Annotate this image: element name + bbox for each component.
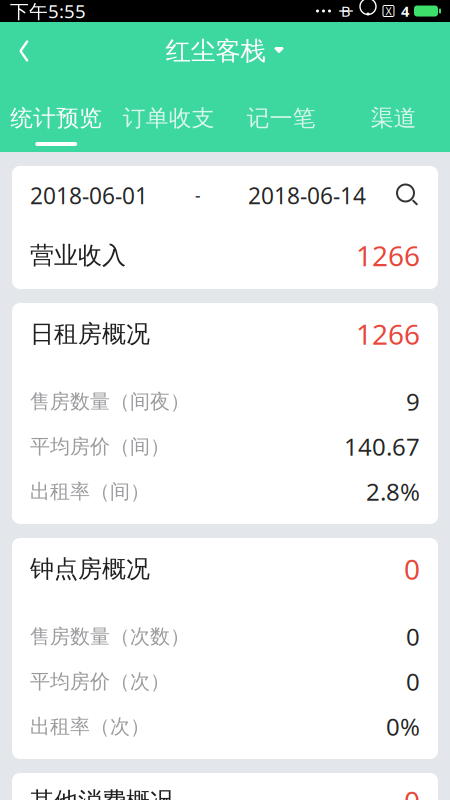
staticText: 下午5:55 [10, 0, 86, 23]
button[interactable]: 返回 [0, 28, 48, 74]
staticText: 平均房价（间） [30, 434, 170, 459]
staticText: 出租率（间） [30, 479, 150, 504]
button[interactable]: 记一笔 [225, 80, 337, 152]
staticText: 售房数量（间夜） [30, 389, 190, 414]
button[interactable]: 渠道 [337, 80, 450, 152]
staticText: 2018-06-14 [248, 180, 366, 210]
staticText: 订单收支 [123, 104, 215, 132]
staticText: - [195, 184, 201, 207]
staticText: 统计预览 [10, 104, 102, 132]
staticText: 钟点房概况 [30, 554, 150, 584]
staticText: X [385, 4, 391, 18]
staticText: B [341, 1, 351, 21]
button[interactable]: 2018-06-01 [12, 167, 438, 223]
staticText: 日租房概况 [30, 319, 150, 349]
staticText: 记一笔 [247, 104, 316, 132]
staticText: 平均房价（次） [30, 669, 170, 694]
staticText: 0 [406, 621, 420, 652]
staticText: 0 [406, 666, 420, 697]
staticText: 4 [401, 1, 409, 21]
staticText: 营业收入 [30, 241, 126, 270]
staticText: 9 [406, 386, 420, 417]
staticText: 出租率（次） [30, 714, 150, 739]
staticText: 渠道 [371, 104, 417, 132]
staticText: 售房数量（次数） [30, 624, 190, 649]
staticText: 2.8% [366, 476, 420, 507]
staticText: 2018-06-01 [30, 180, 148, 210]
button[interactable]: 统计预览 [0, 80, 112, 152]
staticText: 其他消费概况 [30, 786, 174, 800]
staticText: 1266 [356, 237, 420, 274]
button[interactable]: 红尘客栈 [155, 29, 294, 72]
staticText: 0 [404, 782, 420, 800]
staticText: 0 [404, 550, 420, 588]
staticText: 0% [386, 711, 420, 742]
staticText: 140.67 [344, 431, 420, 462]
staticText: 1266 [356, 315, 420, 353]
staticText: 红尘客栈 [165, 35, 265, 66]
button[interactable]: 订单收支 [112, 80, 225, 152]
